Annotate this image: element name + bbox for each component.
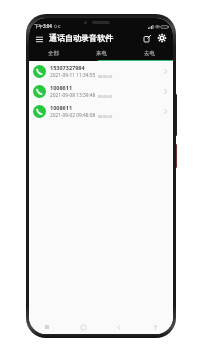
- staticText: 通话自动录音软件: [49, 33, 113, 43]
- button[interactable]: 15307327984: [29, 61, 173, 81]
- button[interactable]: 1008611: [29, 81, 173, 101]
- staticText: 1008611: [50, 84, 73, 91]
- staticText: 2021-09-08 13:39:48: [50, 92, 96, 99]
- button[interactable]: More: [137, 320, 173, 334]
- button[interactable]: Settings: [156, 32, 168, 44]
- button[interactable]: Recents: [29, 320, 65, 334]
- button[interactable]: Menu: [34, 33, 45, 44]
- staticText: 下午3:04: [34, 23, 52, 29]
- staticText: 2021-09-02 09:48:08: [50, 112, 96, 119]
- staticText: 2021-09-11 11:34:55: [50, 72, 96, 79]
- staticText: C: [58, 24, 61, 29]
- staticText: 00:00:00: [98, 114, 113, 119]
- button[interactable]: Home: [65, 320, 101, 334]
- button[interactable]: Share: [141, 32, 153, 44]
- staticText: 全部: [48, 50, 59, 57]
- button[interactable]: 去电: [125, 46, 173, 61]
- button[interactable]: 来电: [77, 46, 125, 61]
- staticText: 去电: [144, 50, 155, 57]
- staticText: 来电: [96, 50, 107, 57]
- staticText: 15307327984: [50, 64, 85, 71]
- staticText: 00:00:00: [98, 74, 113, 79]
- button[interactable]: 1008611: [29, 101, 173, 121]
- staticText: 00:00:00: [98, 94, 113, 99]
- button[interactable]: 全部: [29, 46, 77, 61]
- staticText: 1008611: [50, 104, 73, 111]
